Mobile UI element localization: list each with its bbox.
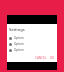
- button[interactable]: Option: [7, 41, 57, 47]
- staticText: Option: [14, 42, 24, 46]
- button[interactable]: Option: [7, 47, 57, 53]
- button[interactable]: Option: [7, 35, 57, 41]
- button[interactable]: CANCEL: [35, 56, 47, 60]
- staticText: Settings: [9, 27, 25, 32]
- staticText: Option: [14, 48, 24, 52]
- button[interactable]: OK: [50, 56, 55, 60]
- staticText: Option: [14, 36, 24, 40]
